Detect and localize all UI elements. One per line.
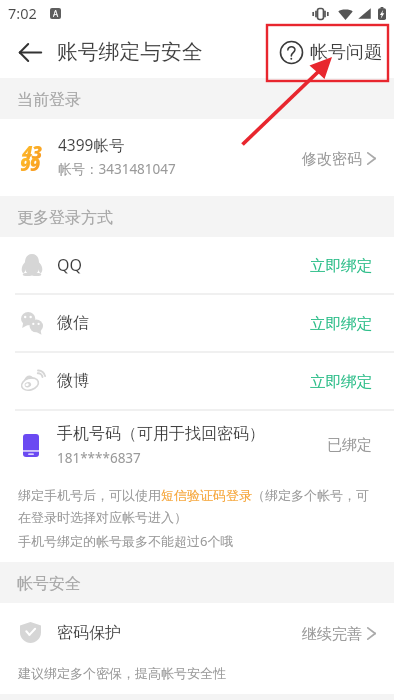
button[interactable]: 手机号码（可用于找回密码） (0, 411, 394, 480)
staticText: 手机号码（可用于找回密码） (57, 424, 265, 444)
staticText: 当前登录 (17, 90, 81, 110)
staticText: 帐号：3431481047 (58, 160, 176, 178)
staticText: 绑定手机号后，可以使用短信验证码登录（绑定多个帐号，可 在登录时选择对应帐号进入… (18, 487, 369, 550)
button[interactable]: 帐号问题 (280, 41, 382, 64)
staticText: 已绑定 (327, 436, 372, 455)
staticText: A (53, 8, 59, 19)
staticText: 立即绑定 (310, 314, 373, 334)
staticText: 密码保护 (57, 623, 121, 643)
staticText: 修改密码 (302, 150, 362, 169)
staticText: 4399帐号 (58, 134, 125, 155)
staticText: 继续完善 (302, 625, 362, 644)
staticText: 微信 (57, 313, 89, 333)
staticText: 43 (22, 140, 42, 165)
staticText: QQ (57, 254, 82, 276)
staticText: 帐号问题 (310, 41, 382, 64)
button[interactable]: Back (11, 33, 49, 71)
staticText: 181****6837 (57, 449, 141, 467)
staticText: 微博 (57, 371, 89, 391)
staticText: 99 (20, 152, 40, 177)
button[interactable]: 微信 (0, 295, 394, 351)
staticText: 立即绑定 (310, 256, 373, 276)
button[interactable]: 微博 (0, 353, 394, 409)
button[interactable]: 密码保护 (0, 603, 394, 662)
staticText: 更多登录方式 (17, 208, 113, 228)
staticText: 立即绑定 (310, 372, 373, 392)
button[interactable]: QQ (0, 237, 394, 293)
button[interactable]: 43 (0, 119, 394, 196)
staticText: 7:02 (8, 3, 37, 23)
staticText: 帐号安全 (17, 574, 81, 594)
staticText: 账号绑定与安全 (57, 39, 203, 65)
staticText: 建议绑定多个密保，提高帐号安全性 (18, 665, 226, 681)
